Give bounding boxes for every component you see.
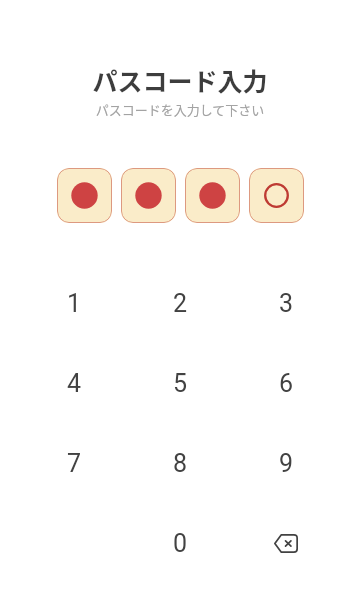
button[interactable]: Backspace	[233, 503, 339, 583]
button[interactable]: 8	[127, 423, 233, 503]
button[interactable]: 2	[127, 263, 233, 343]
staticText: 4	[67, 369, 82, 398]
button[interactable]: 6	[233, 343, 339, 423]
staticText: 6	[279, 369, 294, 398]
staticText: 0	[173, 529, 188, 558]
staticText: パスコードを入力して下さい	[0, 100, 360, 119]
staticText: 5	[173, 369, 188, 398]
staticText: 3	[279, 289, 294, 318]
staticText: 7	[67, 449, 82, 478]
button[interactable]: 9	[233, 423, 339, 503]
staticText: 2	[173, 289, 188, 318]
button[interactable]: 0	[127, 503, 233, 583]
staticText: 9	[279, 449, 294, 478]
button[interactable]: 4	[21, 343, 127, 423]
other: Backspace	[274, 534, 298, 553]
button[interactable]: 7	[21, 423, 127, 503]
staticText: パスコード入力	[0, 62, 360, 98]
staticText: 1	[67, 289, 82, 318]
button[interactable]: 1	[21, 263, 127, 343]
button[interactable]: 3	[233, 263, 339, 343]
button[interactable]: 5	[127, 343, 233, 423]
staticText: 8	[173, 449, 188, 478]
